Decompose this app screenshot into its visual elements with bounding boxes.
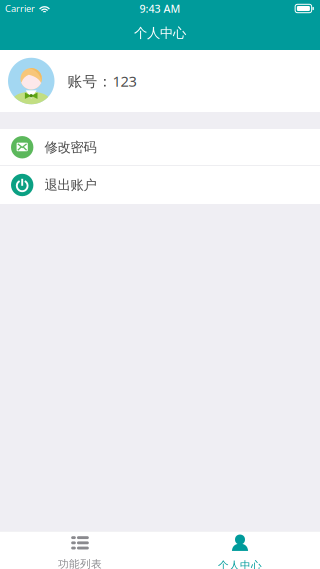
staticText: 退出账户 <box>44 177 96 193</box>
button[interactable]: 功能列表 <box>0 531 160 569</box>
button[interactable]: 退出账户 <box>0 166 320 204</box>
staticText: Carrier <box>5 2 35 15</box>
button[interactable]: 账号：123 <box>0 50 320 112</box>
staticText: 个人中心 <box>134 25 186 41</box>
staticText: 账号：123 <box>67 71 136 91</box>
staticText: 修改密码 <box>44 139 96 155</box>
staticText: 9:43 AM <box>139 1 180 16</box>
button[interactable]: 个人中心 <box>160 531 320 569</box>
staticText: 个人中心 <box>218 559 262 569</box>
button[interactable]: 修改密码 <box>0 129 320 165</box>
staticText: 功能列表 <box>58 557 102 569</box>
